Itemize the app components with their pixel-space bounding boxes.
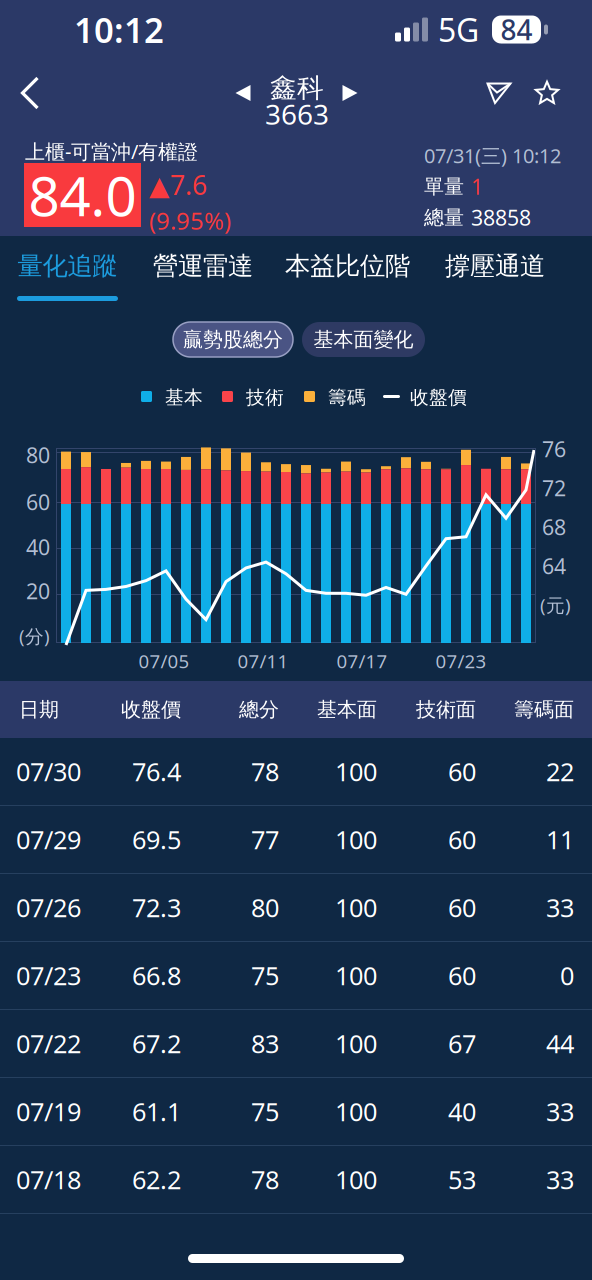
staticText: 80 bbox=[251, 891, 279, 924]
button[interactable]: 07/22 bbox=[0, 1010, 592, 1078]
staticText: 38858 bbox=[471, 203, 531, 232]
button[interactable]: 07/26 bbox=[0, 874, 592, 942]
staticText: 66.8 bbox=[132, 959, 181, 992]
staticText: 72.3 bbox=[132, 891, 181, 924]
button[interactable]: 07/30 bbox=[0, 738, 592, 806]
staticText: 技術面 bbox=[416, 697, 476, 722]
staticText: 營運雷達 bbox=[153, 250, 253, 281]
button[interactable]: 本益比位階 bbox=[278, 236, 417, 306]
staticText: 60 bbox=[448, 755, 476, 788]
staticText: 07/05 bbox=[138, 649, 189, 673]
button[interactable]: Add to watchlist bbox=[520, 59, 574, 127]
staticText: 75 bbox=[251, 959, 279, 992]
staticText: 67.2 bbox=[132, 1027, 181, 1060]
staticText: 22 bbox=[546, 755, 574, 788]
staticText: 日期 bbox=[19, 697, 59, 722]
staticText: 60 bbox=[448, 959, 476, 992]
staticText: 60 bbox=[26, 488, 50, 516]
staticText: 100 bbox=[335, 755, 377, 788]
staticText: 33 bbox=[546, 1163, 574, 1196]
staticText: 80 bbox=[26, 441, 50, 469]
staticText: 基本面 bbox=[317, 697, 377, 722]
staticText: 本益比位階 bbox=[285, 250, 410, 281]
staticText: 44 bbox=[546, 1027, 574, 1060]
staticText: 07/17 bbox=[336, 649, 387, 673]
staticText: 100 bbox=[335, 1163, 377, 1196]
staticText: 100 bbox=[335, 959, 377, 992]
staticText: 基本 bbox=[165, 386, 203, 409]
staticText: 72 bbox=[542, 474, 566, 502]
staticText: 68 bbox=[542, 513, 566, 541]
button[interactable]: Back bbox=[0, 59, 60, 127]
button[interactable]: 07/19 bbox=[0, 1078, 592, 1146]
staticText: 收盤價 bbox=[121, 697, 181, 722]
staticText: 76.4 bbox=[132, 755, 181, 788]
button[interactable]: 營運雷達 bbox=[144, 236, 262, 306]
button[interactable]: 07/18 bbox=[0, 1146, 592, 1214]
staticText: 總量 bbox=[424, 205, 464, 230]
staticText: 07/23 bbox=[435, 649, 486, 673]
staticText: 11 bbox=[546, 823, 574, 856]
staticText: 07/22 bbox=[16, 1027, 81, 1060]
staticText: 40 bbox=[448, 1095, 476, 1128]
staticText: 技術 bbox=[246, 386, 284, 409]
staticText: 07/11 bbox=[237, 649, 288, 673]
staticText: 60 bbox=[448, 823, 476, 856]
staticText: 78 bbox=[251, 1163, 279, 1196]
staticText: 75 bbox=[251, 1095, 279, 1128]
staticText: 07/23 bbox=[16, 959, 81, 992]
staticText: 100 bbox=[335, 891, 377, 924]
staticText: (分) bbox=[19, 624, 50, 648]
staticText: 籌碼面 bbox=[514, 697, 574, 722]
staticText: 上櫃-可當沖/有權證 bbox=[25, 138, 198, 165]
staticText: 77 bbox=[251, 823, 279, 856]
staticText: 07/18 bbox=[16, 1163, 81, 1196]
staticText: ▲7.6 bbox=[149, 167, 207, 202]
staticText: 07/19 bbox=[16, 1095, 81, 1128]
staticText: 53 bbox=[448, 1163, 476, 1196]
staticText: (元) bbox=[540, 593, 571, 617]
staticText: 84.0 bbox=[28, 159, 136, 231]
staticText: 07/30 bbox=[16, 755, 81, 788]
button[interactable]: 撐壓通道 bbox=[436, 236, 554, 306]
staticText: 總分 bbox=[239, 697, 279, 722]
staticText: 76 bbox=[542, 435, 566, 463]
staticText: 量化追蹤 bbox=[17, 250, 117, 281]
staticText: 收盤價 bbox=[410, 386, 467, 409]
button[interactable]: 量化追蹤 bbox=[6, 236, 129, 306]
staticText: 61.1 bbox=[132, 1095, 181, 1128]
staticText: 20 bbox=[26, 577, 50, 605]
button[interactable]: 基本面變化 bbox=[302, 322, 425, 357]
staticText: 67 bbox=[448, 1027, 476, 1060]
button[interactable]: Next stock bbox=[328, 59, 372, 127]
button[interactable]: Share bbox=[472, 59, 526, 127]
staticText: 07/26 bbox=[16, 891, 81, 924]
staticText: 贏勢股總分 bbox=[183, 327, 283, 352]
staticText: 69.5 bbox=[132, 823, 181, 856]
staticText: 100 bbox=[335, 823, 377, 856]
staticText: 83 bbox=[251, 1027, 279, 1060]
staticText: 單量 bbox=[424, 174, 464, 199]
staticText: 62.2 bbox=[132, 1163, 181, 1196]
staticText: 100 bbox=[335, 1027, 377, 1060]
button[interactable]: 07/23 bbox=[0, 942, 592, 1010]
staticText: (9.95%) bbox=[149, 204, 231, 236]
staticText: 07/29 bbox=[16, 823, 81, 856]
staticText: 基本面變化 bbox=[313, 327, 413, 352]
staticText: 3663 bbox=[265, 95, 329, 133]
button[interactable]: 贏勢股總分 bbox=[173, 322, 293, 357]
staticText: 78 bbox=[251, 755, 279, 788]
button[interactable]: 07/29 bbox=[0, 806, 592, 874]
staticText: 07/31(三) 10:12 bbox=[424, 142, 561, 169]
staticText: 鑫科 bbox=[270, 72, 324, 104]
staticText: 64 bbox=[542, 552, 566, 580]
staticText: 撐壓通道 bbox=[445, 250, 545, 281]
staticText: 100 bbox=[335, 1095, 377, 1128]
button[interactable]: Previous stock bbox=[221, 59, 265, 127]
staticText: 10:12 bbox=[74, 6, 164, 52]
staticText: 40 bbox=[26, 533, 50, 561]
staticText: 60 bbox=[448, 891, 476, 924]
staticText: 0 bbox=[560, 959, 574, 992]
staticText: 5G bbox=[438, 8, 479, 51]
staticText: 33 bbox=[546, 1095, 574, 1128]
